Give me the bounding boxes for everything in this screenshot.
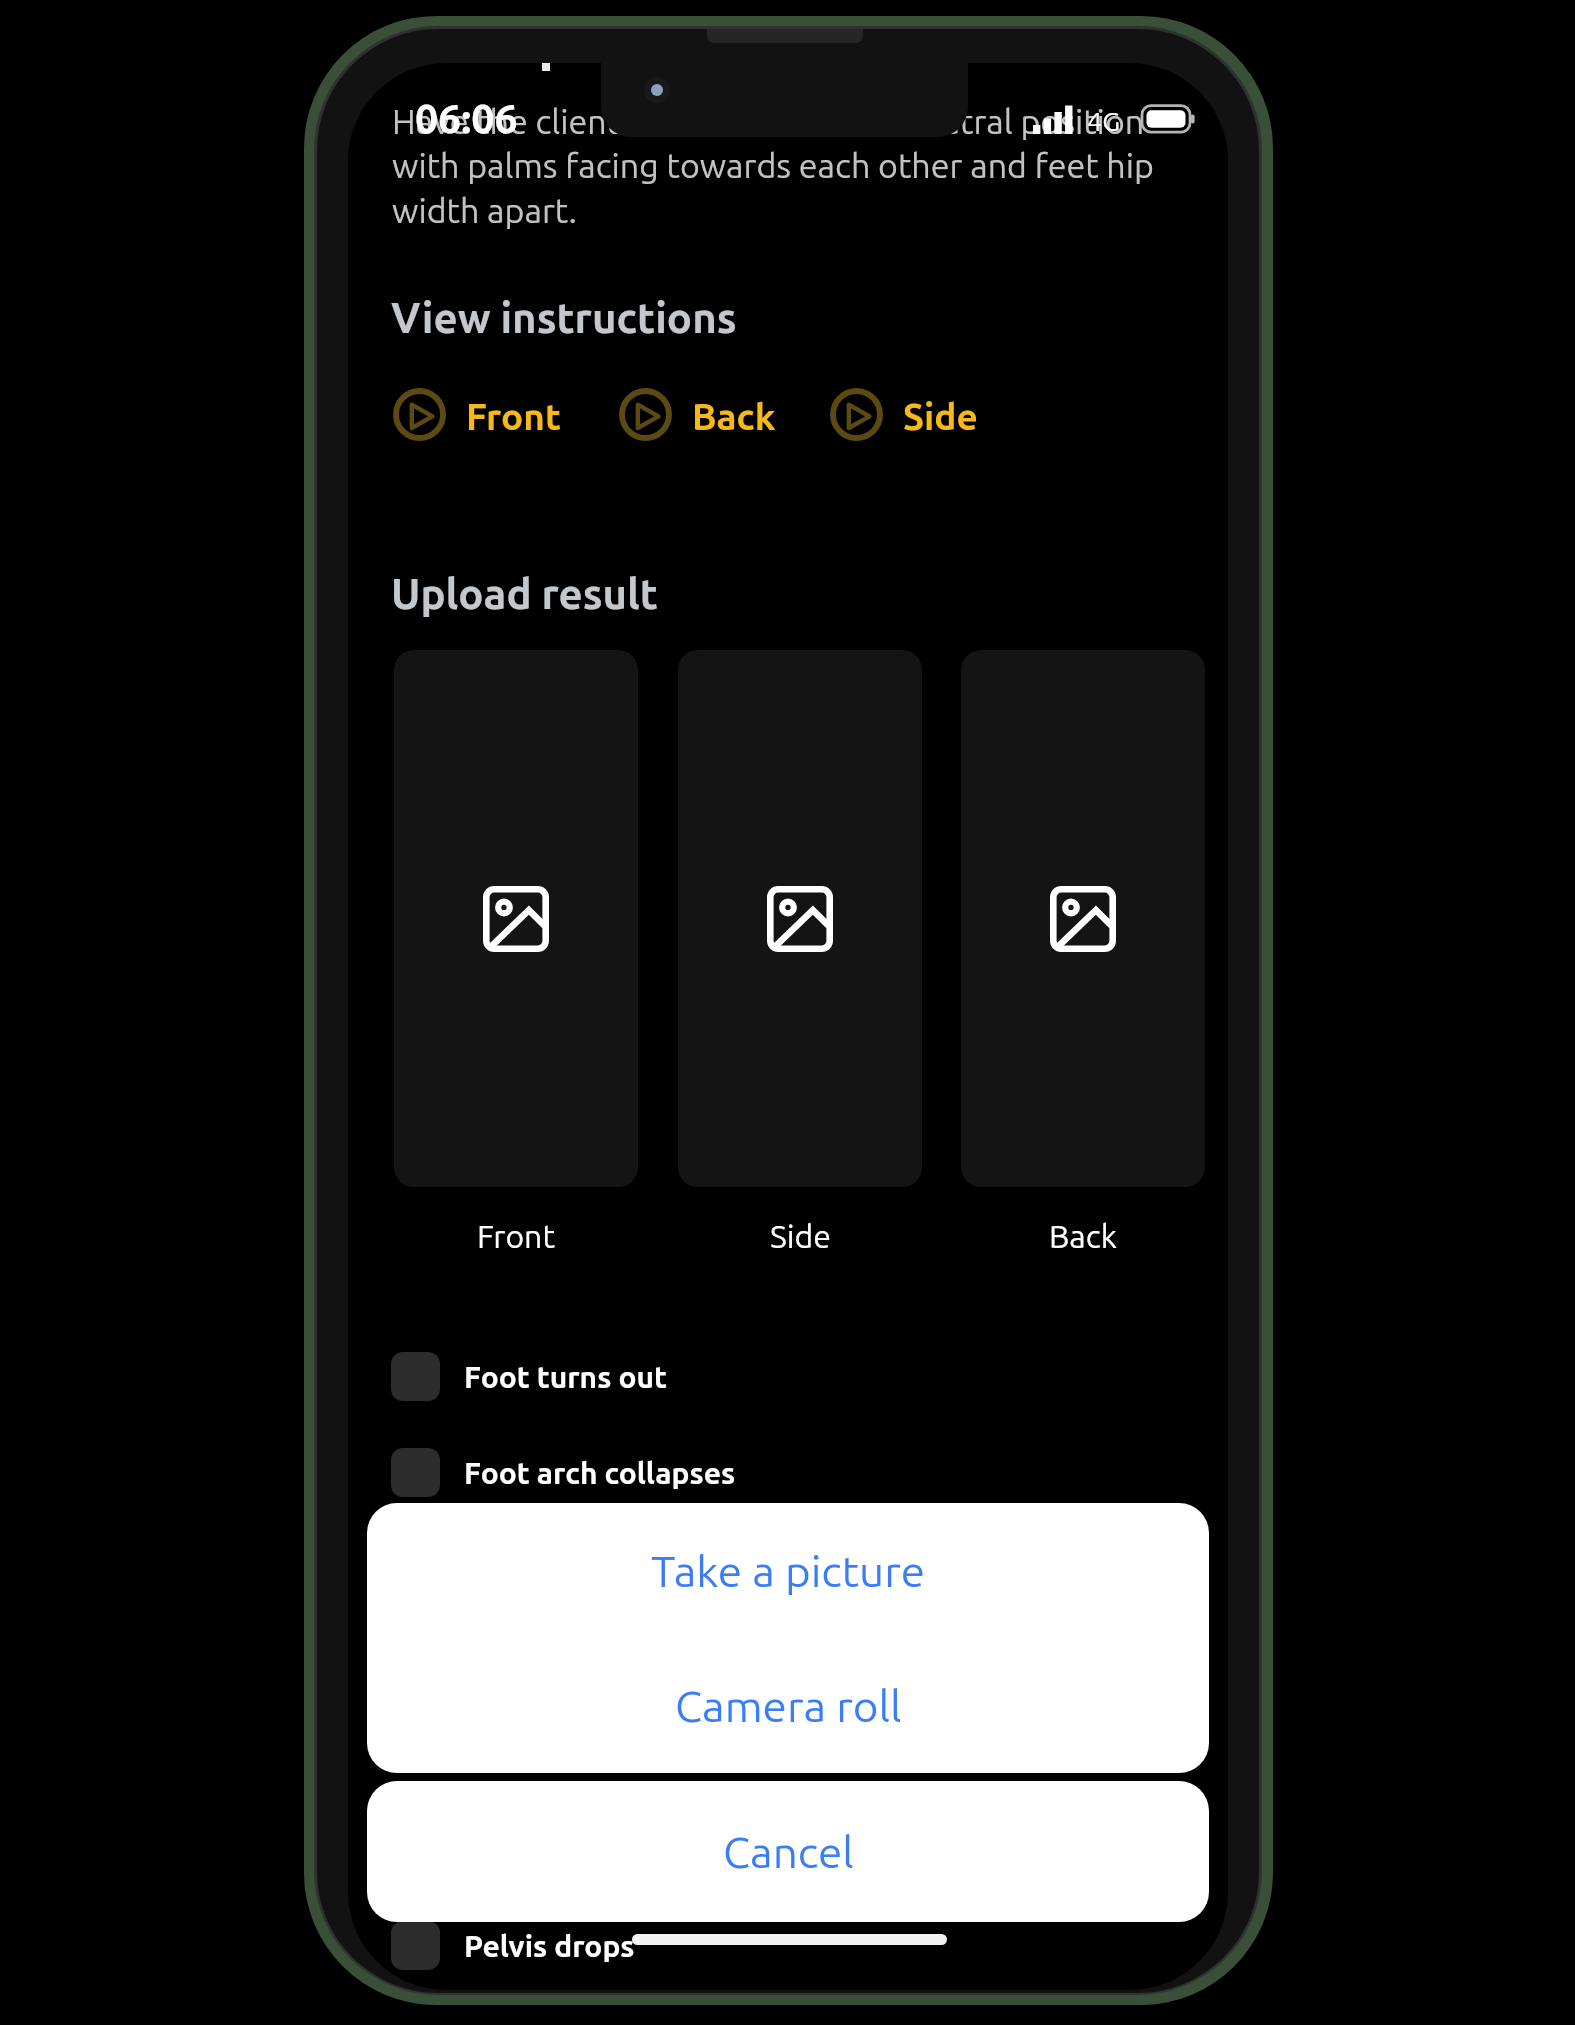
staticText: Upload result	[391, 570, 658, 617]
staticText: Foot arch collapses	[464, 1456, 736, 1490]
staticText: Camera roll	[675, 1681, 902, 1730]
button[interactable]: Upload Front photo	[394, 650, 638, 1187]
staticText: Foot turns out	[464, 1360, 667, 1394]
staticText: Back	[1049, 1218, 1117, 1254]
staticText: 4G	[1087, 106, 1121, 136]
button[interactable]: Upload Side photo	[678, 650, 922, 1187]
staticText: Back	[692, 396, 776, 437]
button[interactable]: Foot arch collapses	[391, 1448, 736, 1497]
staticText: Pelvis drops	[464, 1929, 635, 1963]
staticText: View instructions	[391, 294, 737, 341]
button[interactable]: Back	[619, 388, 776, 441]
staticText: Have the client stand in a relaxed neutr…	[392, 102, 1182, 230]
button[interactable]: Take a picture	[367, 1503, 1209, 1638]
staticText: 06:06	[415, 95, 518, 141]
button[interactable]: Foot turns out	[391, 1352, 667, 1401]
staticText: Front	[477, 1218, 555, 1254]
staticText: Take a picture	[651, 1546, 926, 1595]
button[interactable]: Upload Back photo	[961, 650, 1205, 1187]
button[interactable]: Camera roll	[367, 1638, 1209, 1773]
button[interactable]: Cancel	[367, 1781, 1209, 1922]
staticText: Side	[903, 396, 978, 437]
staticText: Cancel	[723, 1827, 854, 1876]
button[interactable]: Pelvis drops	[391, 1921, 635, 1970]
staticText: Front	[466, 396, 561, 437]
staticText: Side	[770, 1218, 831, 1254]
button[interactable]: Side	[830, 388, 978, 441]
button[interactable]: Front	[393, 388, 561, 441]
